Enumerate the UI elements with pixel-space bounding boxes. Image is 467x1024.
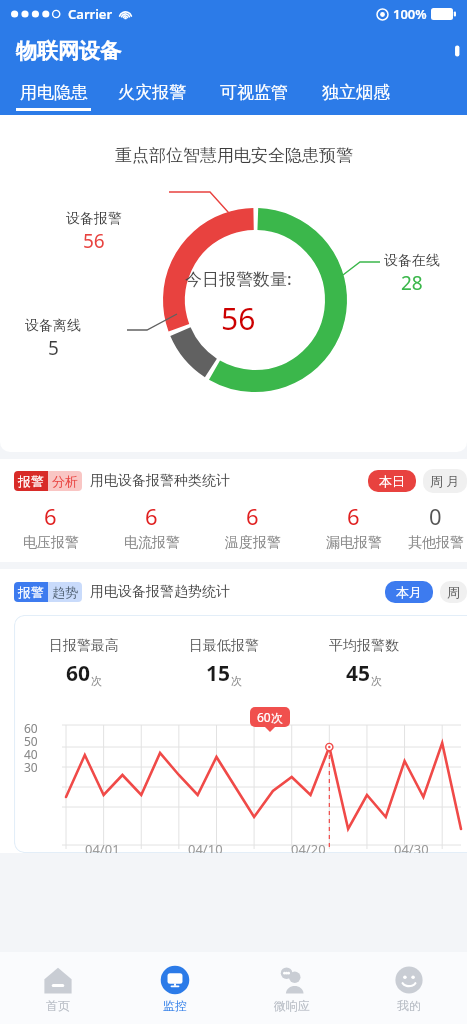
staticText: 40 [24, 746, 38, 759]
staticText: 次 [371, 674, 382, 688]
staticText: 可视监管 [220, 82, 288, 103]
staticText: 我的 [397, 998, 421, 1013]
staticText: Carrier [68, 5, 113, 23]
button[interactable]: 我的 [350, 952, 467, 1024]
staticText: 56 [83, 228, 105, 254]
staticText: 报警 [18, 584, 44, 600]
staticText: 6 [347, 501, 360, 531]
staticText: 平均报警数 [329, 637, 399, 655]
staticText: 周 月 [430, 472, 460, 490]
staticText: 重点部位智慧用电安全隐患预警 [115, 145, 353, 166]
staticText: 30 [24, 759, 38, 772]
button[interactable]: 微响应 [233, 952, 350, 1024]
staticText: 60 [66, 659, 91, 688]
button[interactable]: 6 [303, 501, 404, 552]
staticText: 15 [206, 659, 231, 688]
staticText: 本月 [396, 584, 422, 600]
staticText: 用电设备报警种类统计 [90, 472, 230, 490]
button[interactable]: 报警 [14, 582, 82, 602]
staticText: 设备报警 [66, 210, 122, 228]
staticText: 设备离线 [25, 317, 81, 335]
staticText: 45 [346, 659, 371, 688]
staticText: 趋势 [52, 584, 78, 600]
button[interactable]: 可视监管 [220, 82, 288, 115]
button[interactable]: 6 [0, 501, 101, 552]
staticText: 微响应 [274, 998, 310, 1013]
staticText: 60 [24, 720, 38, 733]
button[interactable]: 本日 [379, 473, 405, 489]
staticText: 火灾报警 [118, 82, 186, 103]
staticText: 首页 [46, 998, 70, 1013]
staticText: 报警 [18, 473, 44, 489]
staticText: 28 [401, 270, 423, 296]
button[interactable]: 周 [447, 584, 460, 600]
staticText: 温度报警 [225, 534, 281, 552]
staticText: 电流报警 [124, 534, 180, 552]
button[interactable]: 周 月 [430, 472, 460, 490]
staticText: 60次 [257, 709, 283, 725]
button[interactable]: 报警 [14, 471, 82, 491]
staticText: 用电隐患 [20, 82, 88, 103]
button[interactable]: 本月 [396, 584, 422, 600]
staticText: 6 [145, 501, 158, 531]
staticText: 次 [231, 674, 242, 688]
staticText: 其他报警 [408, 534, 464, 552]
staticText: 5 [48, 335, 59, 361]
staticText: 漏电报警 [326, 534, 382, 552]
staticText: 56 [221, 298, 256, 339]
staticText: 物联网设备 [16, 38, 121, 64]
button[interactable]: 监控 [116, 952, 233, 1024]
staticText: 100% [393, 5, 427, 23]
button[interactable]: Scan [437, 40, 459, 62]
staticText: 电压报警 [23, 534, 79, 552]
staticText: 设备在线 [384, 252, 440, 270]
staticText: 50 [24, 733, 38, 746]
staticText: 04/01 [85, 840, 120, 853]
staticText: 独立烟感 [322, 82, 390, 103]
staticText: 本日 [379, 473, 405, 489]
staticText: 6 [44, 501, 57, 531]
button[interactable]: 火灾报警 [118, 82, 186, 115]
staticText: 04/20 [291, 840, 326, 853]
staticText: 分析 [52, 473, 78, 489]
button[interactable]: 0 [404, 501, 467, 552]
button[interactable]: 独立烟感 [322, 82, 390, 115]
staticText: 日报警最高 [49, 637, 119, 655]
staticText: 次 [91, 674, 102, 688]
staticText: 6 [246, 501, 259, 531]
staticText: 04/30 [394, 840, 429, 853]
staticText: 0 [429, 501, 442, 531]
staticText: 今日报警数量: [185, 267, 292, 290]
staticText: 周 [447, 584, 460, 600]
button[interactable]: 6 [202, 501, 303, 552]
staticText: 监控 [163, 998, 187, 1013]
staticText: 日最低报警 [189, 637, 259, 655]
staticText: 04/10 [188, 840, 223, 853]
button[interactable]: 首页 [0, 952, 116, 1024]
button[interactable]: 用电隐患 [16, 82, 91, 115]
staticText: 用电设备报警趋势统计 [90, 583, 230, 601]
button[interactable]: 6 [101, 501, 202, 552]
